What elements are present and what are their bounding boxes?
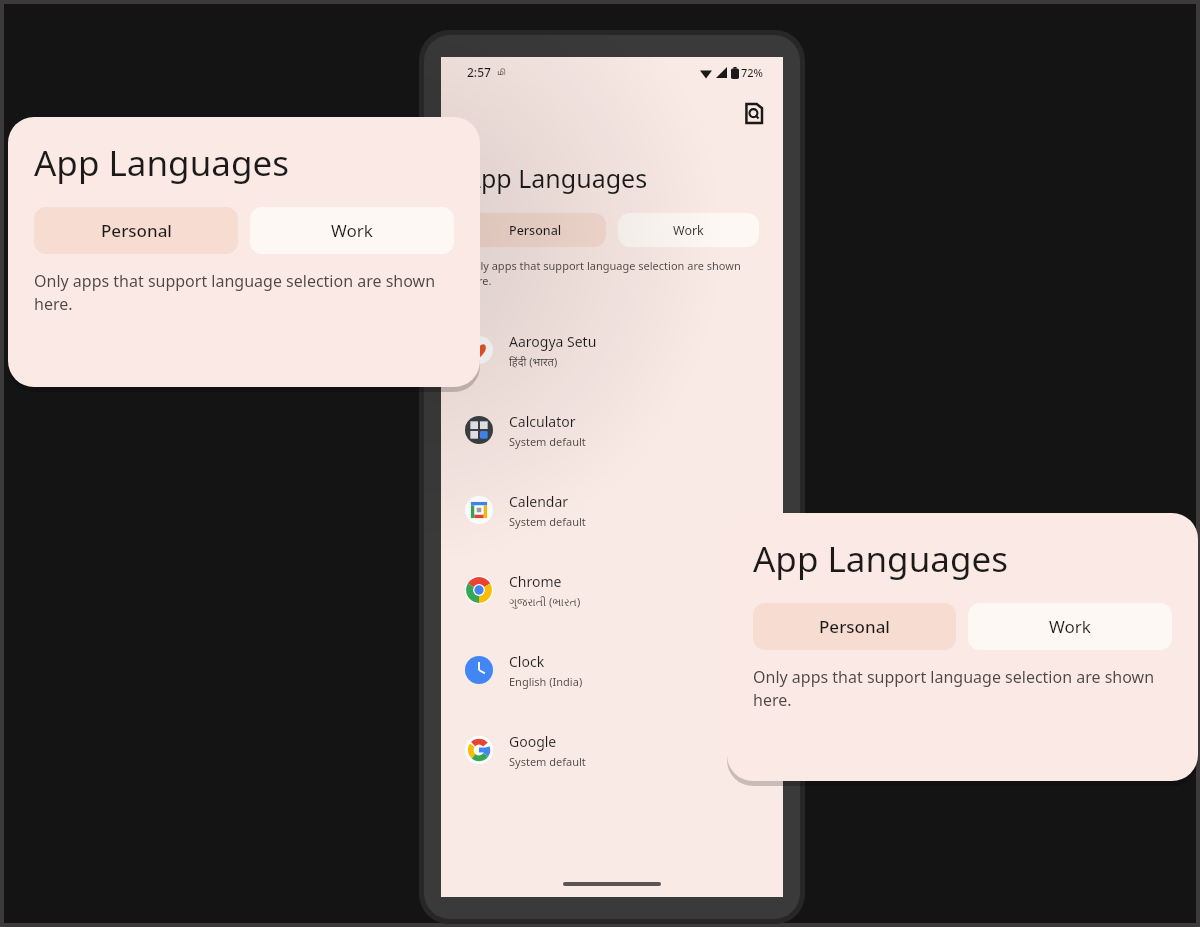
button[interactable]: Search: [737, 98, 767, 128]
button[interactable]: Clock: [441, 630, 783, 710]
button[interactable]: Google: [441, 710, 783, 790]
button[interactable]: Personal: [34, 207, 238, 254]
staticText: Only apps that support language selectio…: [34, 270, 454, 315]
staticText: Calendar: [509, 492, 569, 511]
button[interactable]: Work: [618, 213, 759, 247]
button[interactable]: Calculator: [441, 390, 783, 470]
staticText: App Languages: [465, 161, 648, 195]
staticText: System default: [509, 514, 586, 529]
staticText: Aarogya Setu: [509, 332, 597, 351]
staticText: 72%: [741, 65, 763, 80]
staticText: Work: [331, 219, 373, 242]
staticText: ગુજરાતી (ભારત): [509, 594, 581, 609]
staticText: Only apps that support language selectio…: [753, 666, 1172, 711]
staticText: Google: [509, 732, 557, 751]
staticText: Personal: [819, 615, 890, 638]
staticText: Calculator: [509, 412, 576, 431]
staticText: System default: [509, 434, 586, 449]
staticText: Work: [1049, 615, 1091, 638]
staticText: Clock: [509, 652, 545, 671]
staticText: English (India): [509, 674, 583, 689]
button[interactable]: Aarogya Setu: [441, 310, 783, 390]
button[interactable]: Work: [968, 603, 1172, 650]
button[interactable]: Calendar: [441, 470, 783, 550]
button[interactable]: Work: [250, 207, 454, 254]
button[interactable]: Personal: [465, 213, 606, 247]
staticText: App Languages: [34, 139, 289, 187]
staticText: Work: [673, 222, 704, 239]
staticText: Chrome: [509, 572, 562, 591]
staticText: Personal: [101, 219, 172, 242]
staticText: Only apps that support language selectio…: [465, 258, 759, 288]
staticText: 2:57: [467, 64, 491, 80]
button[interactable]: Personal: [753, 603, 956, 650]
staticText: App Languages: [753, 535, 1008, 583]
staticText: Personal: [509, 222, 562, 239]
staticText: மி: [497, 68, 505, 77]
button[interactable]: Chrome: [441, 550, 783, 630]
staticText: System default: [509, 754, 586, 769]
staticText: हिंदी (भारत): [509, 354, 558, 369]
